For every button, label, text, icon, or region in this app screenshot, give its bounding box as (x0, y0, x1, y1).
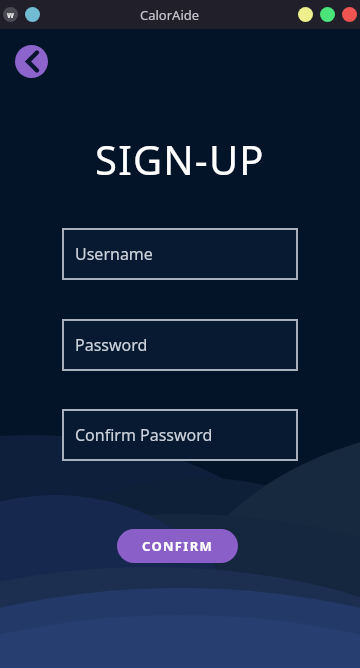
staticText: CONFIRM (142, 537, 214, 555)
staticText: Username (75, 243, 153, 265)
button[interactable] (320, 7, 335, 22)
staticText: Confirm Password (75, 424, 213, 446)
staticText: w (7, 9, 14, 20)
button[interactable] (298, 7, 313, 22)
button[interactable] (342, 7, 357, 22)
staticText: SIGN-UP (95, 132, 265, 186)
staticText: CalorAide (140, 6, 200, 24)
button[interactable]: Password (62, 319, 298, 371)
staticText: Password (75, 334, 148, 356)
button[interactable]: Confirm Password (62, 409, 298, 461)
button[interactable] (15, 45, 48, 78)
button[interactable]: Username (62, 228, 298, 280)
button[interactable]: CONFIRM (117, 529, 238, 563)
